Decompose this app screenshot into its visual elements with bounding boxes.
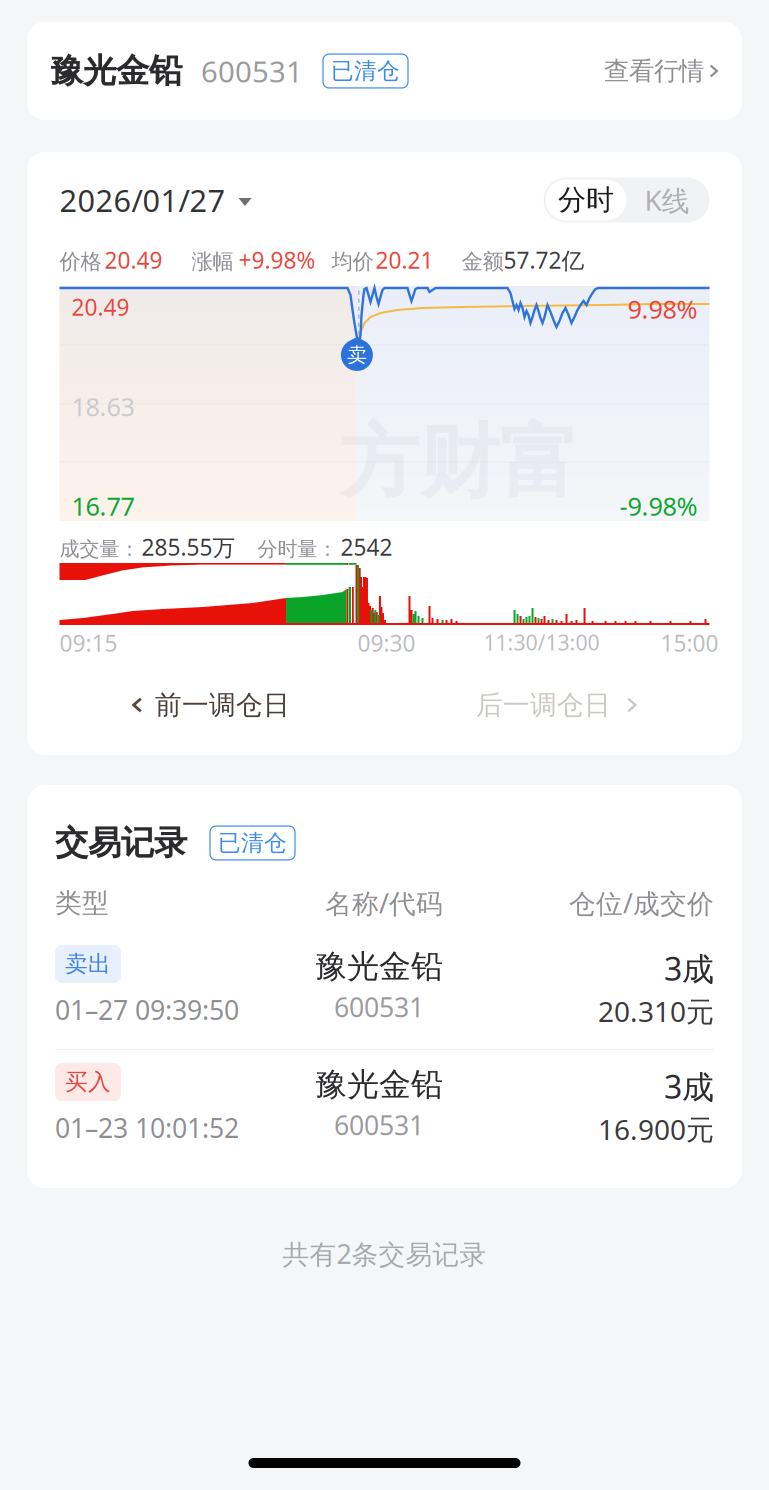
staticText: 15:00 <box>660 628 718 658</box>
staticText: 09:15 <box>59 628 117 658</box>
staticText: 查看行情 <box>604 55 704 86</box>
staticText: 2026/01/27 <box>59 180 225 220</box>
staticText: 285.55万 <box>141 532 235 562</box>
staticText: 仓位/成交价 <box>569 885 714 921</box>
button[interactable]: K线 <box>626 179 707 220</box>
staticText: +9.98% <box>238 245 315 275</box>
staticText: 9.98% <box>627 292 697 326</box>
staticText: 01–27 09:39:50 <box>55 992 239 1027</box>
staticText: 2542 <box>340 532 392 562</box>
staticText: 成交量： <box>59 537 139 561</box>
staticText: 卖出 <box>65 950 111 978</box>
staticText: 名称/代码 <box>325 885 443 921</box>
staticText: 交易记录 <box>55 822 187 863</box>
button[interactable]: 后一调仓日 <box>476 689 639 721</box>
staticText: 已清仓 <box>331 57 400 85</box>
staticText: 已清仓 <box>218 829 287 857</box>
button[interactable]: 分时 <box>545 179 626 220</box>
staticText: 20.310元 <box>598 992 714 1030</box>
staticText: 09:30 <box>357 628 415 658</box>
button[interactable]: 前一调仓日 <box>130 689 290 721</box>
staticText: 卖 <box>347 343 367 367</box>
staticText: 分时量： <box>257 537 337 561</box>
staticText: 豫光金铅 <box>50 50 182 91</box>
staticText: 11:30/13:00 <box>483 628 599 656</box>
staticText: 3成 <box>664 1065 714 1107</box>
staticText: 600531 <box>334 1107 424 1143</box>
staticText: 16.900元 <box>598 1110 714 1148</box>
button[interactable]: 豫光金铅 <box>27 22 742 120</box>
staticText: 后一调仓日 <box>476 689 611 721</box>
staticText: 价格 <box>59 249 101 275</box>
staticText: 600531 <box>334 989 424 1025</box>
staticText: 涨幅 <box>191 249 233 275</box>
staticText: 豫光金铅 <box>315 947 443 986</box>
staticText: 买入 <box>65 1068 111 1096</box>
staticText: 前一调仓日 <box>155 689 290 721</box>
staticText: 20.21 <box>375 245 433 275</box>
staticText: 18.63 <box>71 389 134 423</box>
staticText: 分时 <box>558 183 614 217</box>
staticText: 豫光金铅 <box>315 1065 443 1104</box>
staticText: -9.98% <box>619 489 697 523</box>
button[interactable]: 2026/01/27 <box>59 180 251 220</box>
staticText: 20.49 <box>104 245 162 275</box>
staticText: 20.49 <box>71 292 129 322</box>
staticText: 金额 <box>461 249 503 275</box>
staticText: 01–23 10:01:52 <box>55 1110 239 1145</box>
staticText: 16.77 <box>71 489 134 523</box>
staticText: 共有2条交易记录 <box>282 1236 486 1271</box>
staticText: 3成 <box>664 947 714 989</box>
staticText: 57.72亿 <box>503 245 584 275</box>
staticText: 600531 <box>201 51 303 90</box>
staticText: K线 <box>644 181 689 219</box>
staticText: 方财富 <box>339 413 579 511</box>
staticText: 均价 <box>331 249 373 275</box>
staticText: 类型 <box>55 887 109 919</box>
